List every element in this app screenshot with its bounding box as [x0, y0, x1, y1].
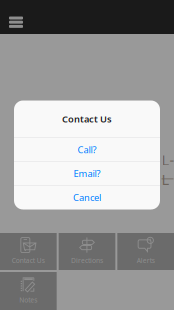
button[interactable]: Alerts	[117, 233, 174, 270]
button[interactable]: Cancel	[14, 185, 160, 209]
staticText: Directions	[71, 256, 103, 265]
button[interactable]: Menu	[4, 0, 28, 34]
button[interactable]: Contact Us	[0, 233, 57, 270]
button[interactable]: Directions	[59, 233, 115, 270]
button[interactable]: Email?	[14, 162, 160, 185]
staticText: Cancel	[73, 191, 101, 204]
staticText: Call?	[77, 144, 96, 156]
button[interactable]: Call?	[14, 138, 160, 161]
staticText: LL	[161, 150, 174, 189]
staticText: Notes	[19, 296, 37, 304]
staticText: Contact Us	[62, 113, 112, 125]
staticText: Alerts	[137, 256, 155, 265]
staticText: Contact Us	[12, 256, 45, 265]
staticText: Email?	[73, 167, 100, 180]
button[interactable]: Notes	[0, 272, 57, 310]
